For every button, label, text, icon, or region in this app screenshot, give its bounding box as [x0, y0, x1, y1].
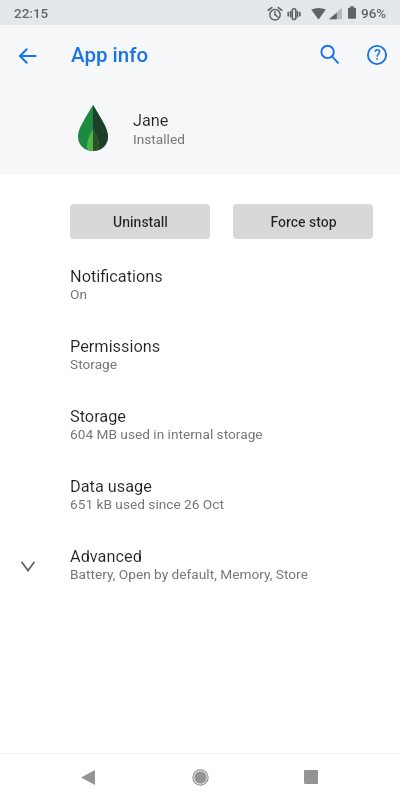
button[interactable]: Search — [309, 35, 349, 75]
button[interactable]: Back — [64, 754, 112, 800]
button[interactable]: Storage — [0, 403, 400, 473]
staticText: Jane — [133, 111, 169, 130]
staticText: Installed — [133, 131, 185, 147]
button[interactable]: Help — [357, 35, 397, 75]
staticText: 604 MB used in internal storage — [70, 426, 263, 442]
staticText: Data usage — [70, 477, 152, 496]
button[interactable]: Permissions — [0, 333, 400, 403]
button[interactable]: Advanced — [0, 543, 400, 613]
staticText: Permissions — [70, 337, 161, 356]
staticText: 651 kB used since 26 Oct — [70, 496, 224, 512]
staticText: App info — [71, 43, 149, 67]
staticText: Notifications — [70, 267, 163, 286]
staticText: 22:15 — [14, 5, 49, 21]
staticText: Storage — [70, 356, 118, 372]
button[interactable]: Notifications — [0, 263, 400, 333]
button[interactable]: Back — [7, 36, 47, 76]
button[interactable]: Recent apps — [287, 754, 335, 800]
staticText: ? — [374, 47, 381, 63]
staticText: 96% — [361, 5, 387, 21]
button[interactable]: Uninstall — [70, 204, 210, 239]
staticText: Force stop — [270, 214, 337, 230]
button[interactable]: Force stop — [233, 204, 373, 239]
staticText: On — [70, 286, 87, 302]
staticText: Storage — [70, 407, 127, 426]
staticText: Advanced — [70, 547, 142, 566]
staticText: Uninstall — [113, 214, 168, 230]
staticText: Battery, Open by default, Memory, Store — [70, 566, 308, 582]
button[interactable]: Data usage — [0, 473, 400, 543]
button[interactable]: Home — [176, 754, 224, 800]
